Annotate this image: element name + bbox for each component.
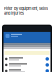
button[interactable] [3, 62, 50, 68]
staticText: Filter by equipment, skills and injuries [4, 6, 48, 16]
button[interactable] [3, 68, 50, 72]
button[interactable] [3, 56, 50, 62]
